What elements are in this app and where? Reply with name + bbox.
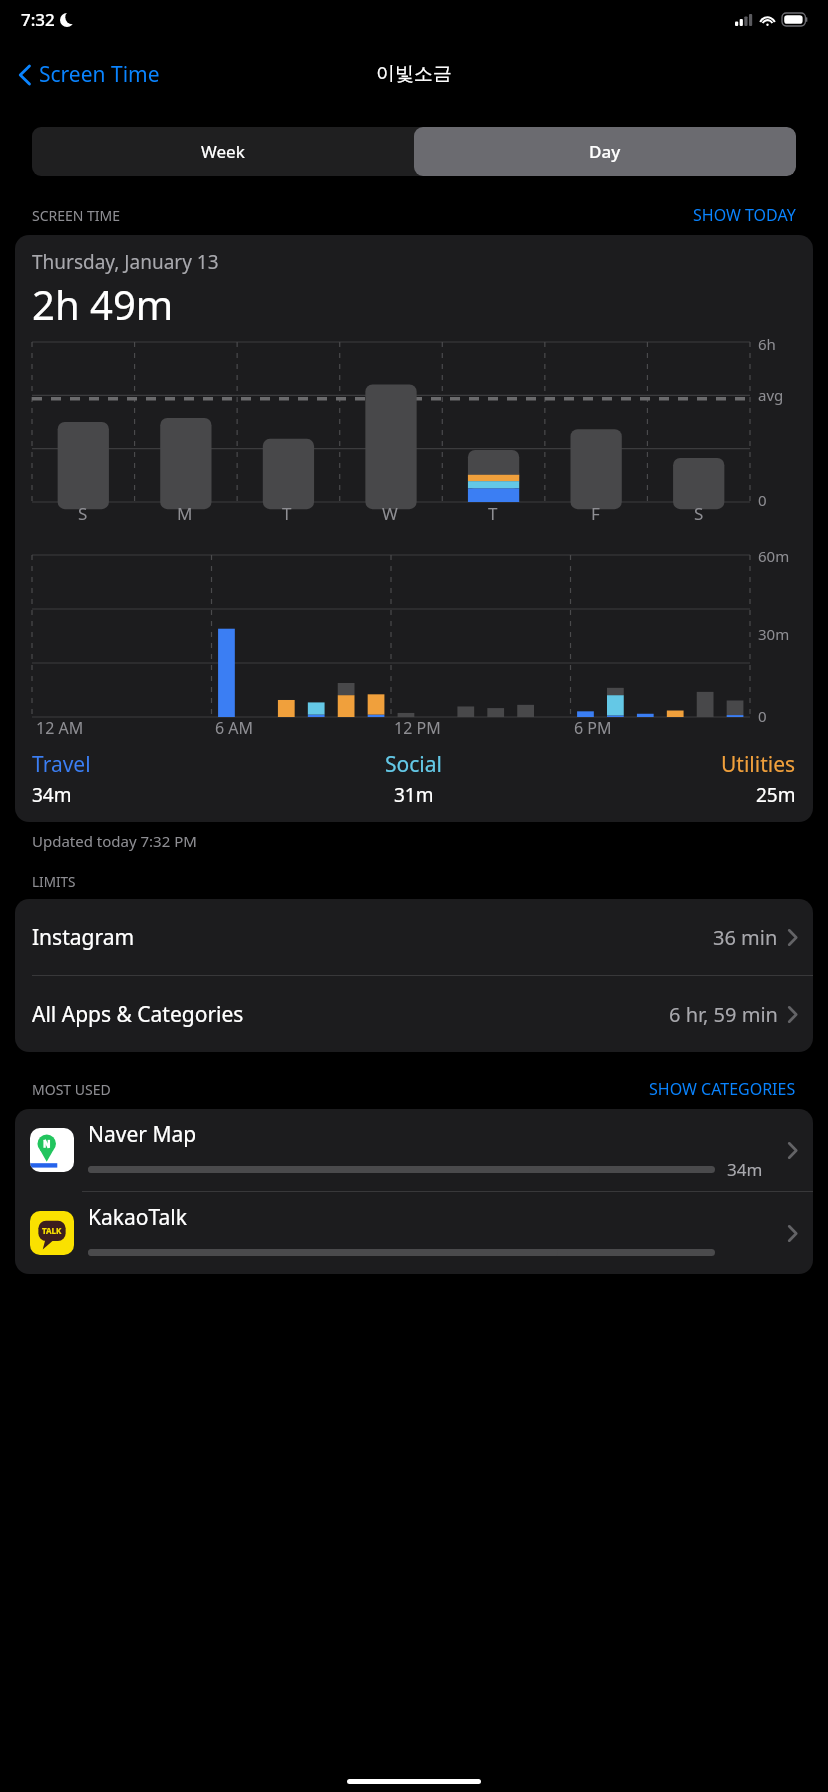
button[interactable]: Utilities (541, 750, 796, 808)
staticText: Travel (32, 750, 91, 779)
staticText: Thursday, January 13 (32, 249, 219, 275)
staticText: 36 min (713, 924, 778, 951)
staticText: T (488, 502, 498, 525)
staticText: T (282, 502, 292, 525)
staticText: All Apps & Categories (32, 1000, 244, 1029)
staticText: 6 PM (574, 717, 612, 739)
staticText: 0 (758, 490, 767, 510)
staticText: 34m (32, 782, 72, 808)
staticText: Screen Time (39, 60, 160, 89)
button[interactable]: SHOW CATEGORIES (649, 1078, 796, 1100)
button[interactable]: All Apps & Categories (15, 976, 813, 1052)
staticText: 12 AM (36, 717, 84, 739)
staticText: 6h (758, 334, 776, 354)
staticText: 0 (758, 706, 767, 726)
staticText: Day (589, 140, 621, 163)
staticText: LIMITS (32, 873, 76, 891)
staticText: Utilities (721, 750, 796, 779)
staticText: Week (201, 140, 245, 163)
button[interactable]: Week (32, 127, 414, 176)
button[interactable]: Naver Map (15, 1109, 813, 1191)
button[interactable]: Screen Time (14, 54, 164, 95)
staticText: Social (385, 750, 442, 779)
staticText: Naver Map (88, 1120, 197, 1149)
staticText: KakaoTalk (88, 1203, 187, 1232)
staticText: 30m (758, 624, 790, 644)
button[interactable]: TALK (15, 1192, 813, 1274)
staticText: M (177, 502, 193, 525)
staticText: 6 hr, 59 min (669, 1001, 778, 1028)
staticText: 25m (756, 782, 796, 808)
staticText: TALK (42, 1225, 62, 1236)
button[interactable]: Social (286, 750, 541, 808)
staticText: 2h 49m (32, 277, 174, 331)
staticText: F (591, 502, 600, 525)
staticText: avg (758, 385, 784, 405)
staticText: SHOW CATEGORIES (649, 1078, 796, 1100)
button[interactable]: SHOW TODAY (693, 204, 796, 226)
staticText: 7:32 (21, 8, 55, 31)
staticText: S (78, 502, 88, 525)
staticText: Instagram (32, 923, 135, 952)
staticText: 34m (727, 1158, 781, 1181)
button[interactable]: Travel (32, 750, 286, 808)
staticText: SHOW TODAY (693, 204, 796, 226)
staticText: 12 PM (394, 717, 441, 739)
button[interactable]: Instagram (15, 899, 813, 976)
button[interactable]: Day (414, 127, 796, 176)
staticText: 6 AM (215, 717, 254, 739)
staticText: 31m (394, 782, 434, 808)
staticText: MOST USED (32, 1080, 111, 1099)
staticText: 이빛소금 (376, 62, 452, 86)
staticText: 60m (758, 546, 790, 566)
staticText: Updated today 7:32 PM (32, 831, 197, 851)
staticText: SCREEN TIME (32, 206, 121, 225)
staticText: W (382, 502, 398, 525)
staticText: S (694, 502, 704, 525)
